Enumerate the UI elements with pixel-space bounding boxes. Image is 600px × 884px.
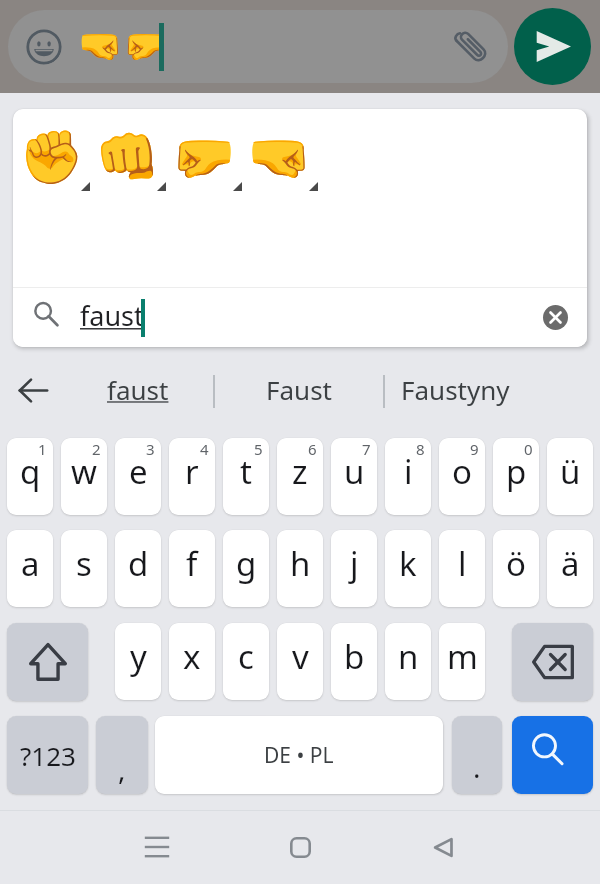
staticText: c — [238, 634, 254, 679]
staticText: ✊ — [19, 127, 84, 188]
staticText: ö — [506, 541, 526, 586]
button[interactable]: 5 — [223, 438, 269, 515]
staticText: faust — [107, 372, 169, 407]
button[interactable]: s — [61, 530, 107, 607]
button[interactable]: j — [331, 530, 377, 607]
button[interactable]: Attach — [450, 24, 493, 69]
staticText: ?123 — [20, 738, 76, 773]
staticText: h — [290, 541, 311, 586]
button[interactable]: Faust — [229, 350, 369, 428]
staticText: Faustyny — [401, 372, 510, 407]
staticText: 3 — [146, 439, 155, 459]
staticText: 6 — [308, 439, 317, 459]
button[interactable]: 4 — [169, 438, 215, 515]
staticText: 0 — [524, 439, 533, 459]
staticText: 🤜🤛 — [78, 25, 168, 67]
button[interactable]: ü — [547, 438, 593, 515]
button[interactable]: Clear search — [541, 303, 570, 332]
staticText: 5 — [254, 439, 263, 459]
staticText: , — [118, 750, 126, 788]
button[interactable]: Back — [415, 817, 471, 877]
staticText: n — [398, 634, 419, 679]
button[interactable]: 0 — [493, 438, 539, 515]
staticText: s — [76, 541, 92, 586]
button[interactable]: Home — [272, 817, 328, 877]
button[interactable]: Recents — [129, 817, 185, 877]
staticText: 🤜 — [247, 127, 312, 188]
staticText: p — [506, 449, 527, 494]
button[interactable]: Shift — [7, 623, 88, 701]
staticText: j — [350, 541, 359, 586]
button[interactable]: ✊ — [13, 119, 89, 195]
staticText: d — [128, 541, 149, 586]
staticText: 9 — [470, 439, 479, 459]
button[interactable]: 7 — [331, 438, 377, 515]
button[interactable]: l — [439, 530, 485, 607]
button[interactable]: k — [385, 530, 431, 607]
button[interactable]: f — [169, 530, 215, 607]
staticText: t — [240, 449, 252, 494]
button[interactable]: m — [439, 623, 485, 700]
staticText: Faust — [266, 372, 332, 407]
button[interactable]: faust — [73, 350, 203, 428]
button[interactable]: x — [169, 623, 215, 700]
button[interactable]: 🤛 — [165, 119, 241, 195]
staticText: f — [186, 541, 198, 586]
button[interactable]: d — [115, 530, 161, 607]
button[interactable]: Search — [512, 716, 593, 794]
button[interactable]: , — [96, 716, 148, 794]
button[interactable]: v — [277, 623, 323, 700]
staticText: o — [452, 449, 472, 494]
staticText: 7 — [362, 439, 371, 459]
staticText: v — [292, 634, 309, 679]
staticText: q — [20, 449, 41, 494]
button[interactable]: Faustyny — [401, 350, 581, 428]
staticText: r — [185, 449, 199, 494]
button[interactable]: Back — [13, 372, 54, 409]
button[interactable]: Send — [514, 8, 591, 85]
staticText: 1 — [38, 439, 47, 459]
staticText: i — [404, 449, 413, 494]
button[interactable]: ?123 — [7, 716, 88, 794]
staticText: m — [447, 634, 478, 679]
button[interactable]: Space — [155, 716, 443, 794]
button[interactable]: y — [115, 623, 161, 700]
staticText: faust — [80, 297, 144, 334]
button[interactable]: 6 — [277, 438, 323, 515]
button[interactable]: b — [331, 623, 377, 700]
button[interactable]: Emoji — [25, 28, 62, 65]
button[interactable]: 👊 — [89, 119, 165, 195]
button[interactable]: ö — [493, 530, 539, 607]
button[interactable]: h — [277, 530, 323, 607]
staticText: e — [129, 449, 148, 494]
button[interactable]: Backspace — [512, 623, 593, 701]
staticText: 2 — [92, 439, 101, 459]
button[interactable]: 1 — [7, 438, 53, 515]
button[interactable] — [8, 10, 508, 83]
staticText: 👊 — [95, 127, 160, 188]
button[interactable]: faust — [13, 288, 587, 347]
staticText: . — [473, 748, 481, 786]
button[interactable]: 9 — [439, 438, 485, 515]
button[interactable]: 8 — [385, 438, 431, 515]
button[interactable]: 🤜 — [241, 119, 317, 195]
staticText: u — [344, 449, 365, 494]
button[interactable]: 3 — [115, 438, 161, 515]
button[interactable]: g — [223, 530, 269, 607]
staticText: x — [183, 634, 201, 679]
button[interactable]: . — [452, 716, 502, 794]
staticText: ä — [561, 541, 580, 586]
staticText: l — [458, 541, 467, 586]
staticText: z — [292, 449, 308, 494]
staticText: g — [236, 541, 257, 586]
button[interactable]: n — [385, 623, 431, 700]
staticText: 8 — [416, 439, 425, 459]
button[interactable]: ä — [547, 530, 593, 607]
button[interactable]: 2 — [61, 438, 107, 515]
staticText: 🤛 — [171, 127, 236, 188]
staticText: w — [71, 449, 97, 494]
staticText: 4 — [200, 439, 209, 459]
button[interactable]: a — [7, 530, 53, 607]
button[interactable]: c — [223, 623, 269, 700]
staticText: DE • PL — [264, 741, 334, 770]
